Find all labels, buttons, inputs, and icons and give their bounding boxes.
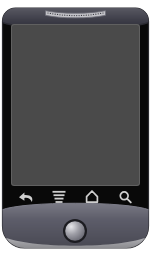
button[interactable]: Home <box>79 188 105 206</box>
button[interactable]: Search <box>112 188 138 206</box>
button[interactable]: Trackball <box>63 219 87 243</box>
button[interactable] <box>11 24 140 186</box>
button[interactable]: Menu <box>46 188 72 206</box>
button[interactable]: Back <box>13 188 39 206</box>
